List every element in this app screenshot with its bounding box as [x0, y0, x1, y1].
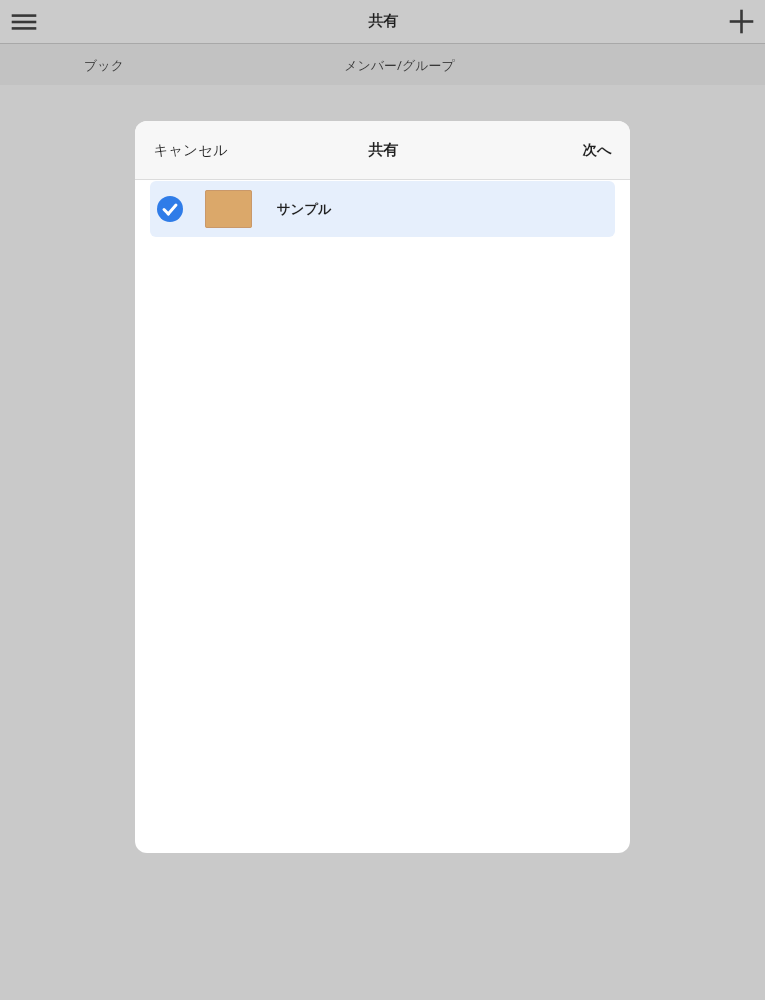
- button[interactable]: Add: [717, 0, 765, 43]
- staticText: 共有: [368, 141, 398, 160]
- staticText: メンバー/グループ: [344, 56, 455, 74]
- staticText: ブック: [84, 57, 124, 73]
- button[interactable]: 次へ: [582, 141, 612, 159]
- staticText: 共有: [368, 12, 398, 31]
- staticText: サンプル: [276, 201, 332, 218]
- button[interactable]: Menu: [0, 0, 48, 43]
- staticText: キャンセル: [153, 141, 228, 159]
- button[interactable]: メンバー/グループ: [319, 44, 479, 85]
- button[interactable]: サンプル: [150, 181, 615, 237]
- staticText: 次へ: [582, 141, 612, 159]
- button[interactable]: キャンセル: [153, 141, 228, 159]
- button[interactable]: ブック: [24, 44, 184, 85]
